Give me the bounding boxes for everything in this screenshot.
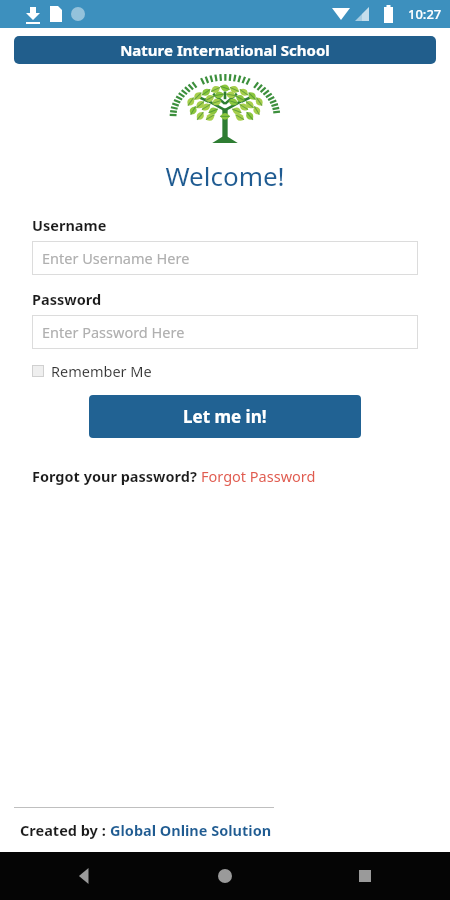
staticText: Let me in!	[183, 405, 267, 428]
button[interactable]: Nature International School	[14, 36, 436, 64]
staticText: Forgot Password	[201, 466, 316, 486]
button[interactable]: Remember Me	[32, 361, 152, 381]
button[interactable]: Enter Password Here	[32, 315, 418, 349]
staticText: Remember Me	[51, 361, 152, 381]
button[interactable]: Forgot Password	[201, 466, 316, 486]
button[interactable]: Back	[70, 861, 100, 891]
staticText: Password	[32, 289, 102, 309]
staticText: Nature International School	[14, 40, 436, 60]
staticText: Enter Username Here	[42, 248, 190, 268]
staticText: 10:27	[408, 5, 442, 23]
staticText: Global Online Solution	[110, 820, 272, 840]
button[interactable]: Enter Username Here	[32, 241, 418, 275]
staticText: Forgot your password?	[32, 466, 201, 486]
button[interactable]: Home	[210, 861, 240, 891]
staticText: Created by :	[20, 820, 110, 840]
button[interactable]: Recent apps	[350, 861, 380, 891]
staticText: Username	[32, 215, 107, 235]
staticText: Welcome!	[0, 158, 450, 193]
button[interactable]: Global Online Solution	[110, 820, 272, 840]
staticText: Enter Password Here	[42, 322, 185, 342]
button[interactable]: Let me in!	[89, 395, 361, 438]
